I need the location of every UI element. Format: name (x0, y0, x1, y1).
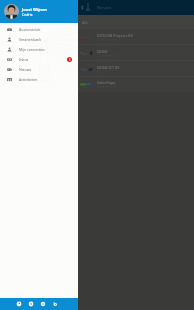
button[interactable]: Mijn connecties (0, 44, 78, 54)
staticText: Cedris (22, 12, 33, 17)
staticText: Alle (82, 20, 88, 24)
button[interactable]: Social link 4 (52, 301, 58, 307)
staticText: Nieuws (19, 67, 32, 72)
button[interactable]: Activiteiten (0, 74, 78, 84)
button[interactable]: Back (78, 0, 86, 15)
button[interactable]: Social link 3 (40, 301, 46, 307)
button[interactable]: Smartenbank (0, 34, 78, 44)
button[interactable]: EDOM (0, 45, 194, 61)
staticText: EDOM (97, 49, 108, 54)
staticText: 1 (69, 58, 71, 62)
button[interactable]: SalesFlapp (0, 77, 194, 92)
staticText: DOTCOM Projects BV (97, 33, 133, 38)
staticText: Mijn connecties (19, 47, 45, 52)
staticText: Nieuws (97, 5, 112, 11)
staticText: Inbox (19, 57, 29, 62)
button[interactable]: Inbox (0, 54, 78, 64)
button[interactable]: EDOM ICT BV (0, 61, 194, 77)
staticText: Joost Wijnen (22, 7, 47, 12)
staticText: EDOM ICT BV (97, 65, 120, 70)
staticText: Businessclub (19, 27, 41, 32)
button[interactable]: Businessclub (0, 24, 78, 34)
staticText: SalesFlapp (97, 80, 116, 85)
staticText: Activiteiten (19, 77, 38, 82)
button[interactable]: Social link 2 (28, 301, 34, 307)
button[interactable]: Nieuws (0, 64, 78, 74)
button[interactable]: DOTCOM Projects BV (0, 29, 194, 45)
staticText: Smartenbank (19, 37, 42, 42)
button[interactable]: Social link 1 (16, 301, 22, 307)
